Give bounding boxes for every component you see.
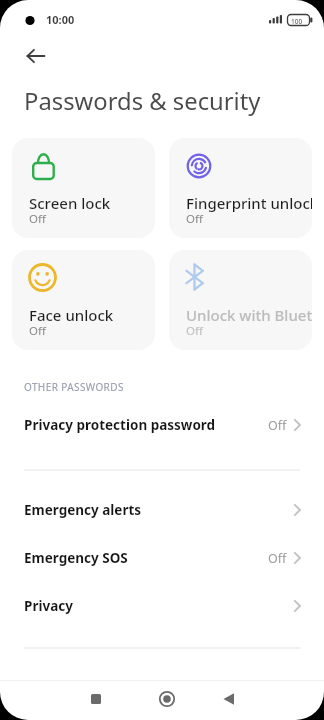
staticText: Face unlock (29, 305, 155, 325)
staticText: Off (186, 323, 203, 339)
button[interactable]: Privacy protection password (0, 401, 324, 449)
staticText: Emergency alerts (24, 501, 142, 519)
button[interactable]: Fingerprint unlock (169, 138, 312, 238)
staticText: Screen lock (29, 193, 155, 213)
staticText: Fingerprint unlock (186, 193, 312, 213)
button[interactable]: Unlock with Bluetooth device (169, 250, 312, 350)
staticText: Privacy (24, 597, 73, 615)
staticText: Off (29, 211, 46, 227)
staticText: 100 (291, 17, 303, 26)
staticText: Emergency SOS (24, 549, 128, 567)
staticText: Unlock with Bluetooth device (186, 305, 312, 325)
button[interactable] (155, 687, 179, 711)
staticText: Off (186, 211, 203, 227)
staticText: OTHER PASSWORDS (24, 380, 124, 394)
button[interactable]: Screen lock (12, 138, 155, 238)
button[interactable]: Emergency SOS (0, 534, 324, 582)
staticText: Off (29, 323, 46, 339)
button[interactable] (84, 687, 108, 711)
staticText: Off (268, 550, 287, 567)
button[interactable]: Emergency alerts (0, 486, 324, 534)
staticText: 10:00 (46, 12, 75, 27)
button[interactable]: Face unlock (12, 250, 155, 350)
button[interactable] (18, 40, 54, 72)
staticText: Off (268, 417, 287, 434)
button[interactable]: Privacy (0, 582, 324, 630)
staticText: Privacy protection password (24, 416, 216, 434)
staticText: Passwords & security (24, 85, 261, 117)
button[interactable] (217, 687, 241, 711)
